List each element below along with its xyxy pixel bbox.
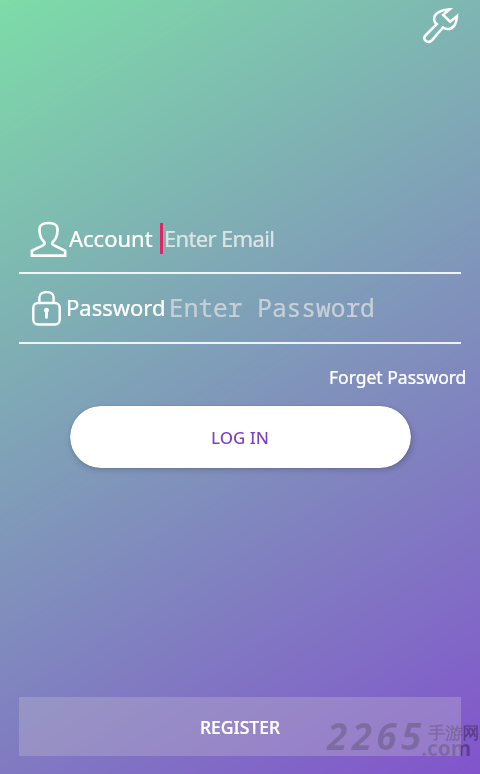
button[interactable]: Forget Password xyxy=(329,365,467,389)
button[interactable]: Settings xyxy=(411,0,467,54)
staticText: 手游网 xyxy=(428,723,479,744)
staticText: Password xyxy=(66,292,166,322)
staticText: Forget Password xyxy=(329,365,467,389)
staticText: 2265 xyxy=(327,710,426,760)
staticText: Account xyxy=(69,223,153,253)
staticText: Enter Email xyxy=(164,223,275,253)
staticText: Enter Password xyxy=(169,291,375,324)
button[interactable]: REGISTER xyxy=(19,697,461,756)
staticText: REGISTER xyxy=(200,715,280,739)
staticText: .com xyxy=(421,734,472,763)
button[interactable]: LOG IN xyxy=(70,406,411,468)
staticText: LOG IN xyxy=(211,426,270,449)
